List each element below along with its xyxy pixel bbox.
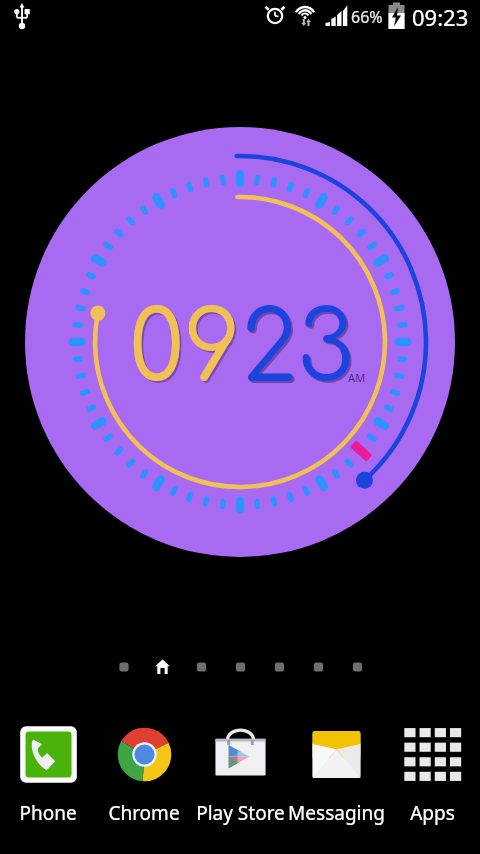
staticText: Phone — [19, 800, 77, 826]
button[interactable]: Phone — [0, 725, 96, 826]
staticText: 09:23 — [412, 2, 469, 32]
staticText: AM — [348, 370, 366, 385]
staticText: Apps — [410, 800, 455, 826]
button[interactable]: Chrome — [96, 725, 192, 826]
staticText: 23 — [243, 298, 357, 406]
staticText: 23 — [241, 296, 355, 404]
staticText: 66% — [351, 6, 383, 28]
button[interactable]: Messaging — [288, 725, 384, 826]
button[interactable]: Apps — [384, 725, 480, 826]
staticText: Chrome — [108, 800, 180, 826]
staticText: 09 — [131, 298, 243, 406]
staticText: Messaging — [288, 800, 385, 826]
button[interactable]: Play Store — [192, 725, 288, 826]
staticText: Play Store — [196, 800, 285, 826]
staticText: 09 — [129, 296, 241, 404]
button[interactable]: Clock widget — [0, 0, 480, 854]
